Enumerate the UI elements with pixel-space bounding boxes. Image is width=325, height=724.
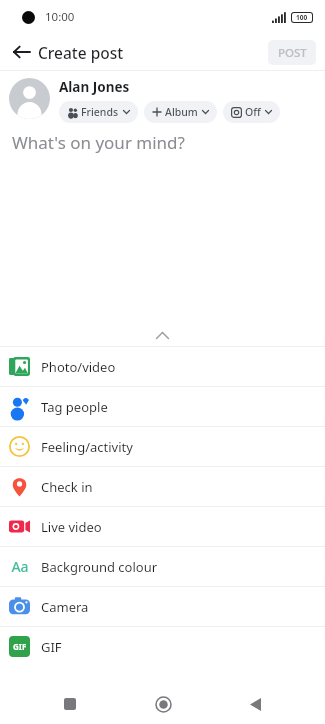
button[interactable]: POST xyxy=(268,40,316,65)
button[interactable]: Back xyxy=(6,36,38,68)
button[interactable]: Album xyxy=(144,101,217,123)
staticText: GIF xyxy=(13,641,27,652)
staticText: 10:00 xyxy=(45,9,75,25)
staticText: Live video xyxy=(41,518,102,536)
button[interactable]: Check in xyxy=(0,467,325,506)
button[interactable]: Photo/video xyxy=(0,347,325,386)
staticText: Check in xyxy=(41,478,93,496)
staticText: 100 xyxy=(296,13,308,22)
button[interactable]: Feeling/activity xyxy=(0,427,325,466)
staticText: What's on your mind? xyxy=(12,131,185,154)
staticText: Alan Jones xyxy=(59,78,130,96)
staticText: POST xyxy=(278,45,307,61)
button[interactable]: Aa xyxy=(0,547,325,586)
staticText: Album xyxy=(165,105,198,119)
button[interactable]: Collapse xyxy=(0,324,325,346)
button[interactable]: Camera xyxy=(0,587,325,626)
button[interactable]: GIF xyxy=(0,627,325,666)
button[interactable]: Off xyxy=(223,101,280,123)
button[interactable]: Recents xyxy=(48,684,92,724)
staticText: Create post xyxy=(38,42,124,63)
staticText: Tag people xyxy=(41,398,108,416)
button[interactable]: Back xyxy=(233,684,277,724)
staticText: Friends xyxy=(81,105,119,119)
staticText: Off xyxy=(245,105,261,119)
staticText: Background colour xyxy=(41,558,158,576)
staticText: GIF xyxy=(41,638,62,656)
button[interactable]: Tag people xyxy=(0,387,325,426)
staticText: Photo/video xyxy=(41,358,116,376)
button[interactable]: Friends xyxy=(59,101,138,123)
button[interactable]: Live video xyxy=(0,507,325,546)
staticText: Aa xyxy=(11,557,29,576)
button[interactable]: Home xyxy=(141,684,185,724)
staticText: Feeling/activity xyxy=(41,438,133,456)
staticText: Camera xyxy=(41,598,89,616)
